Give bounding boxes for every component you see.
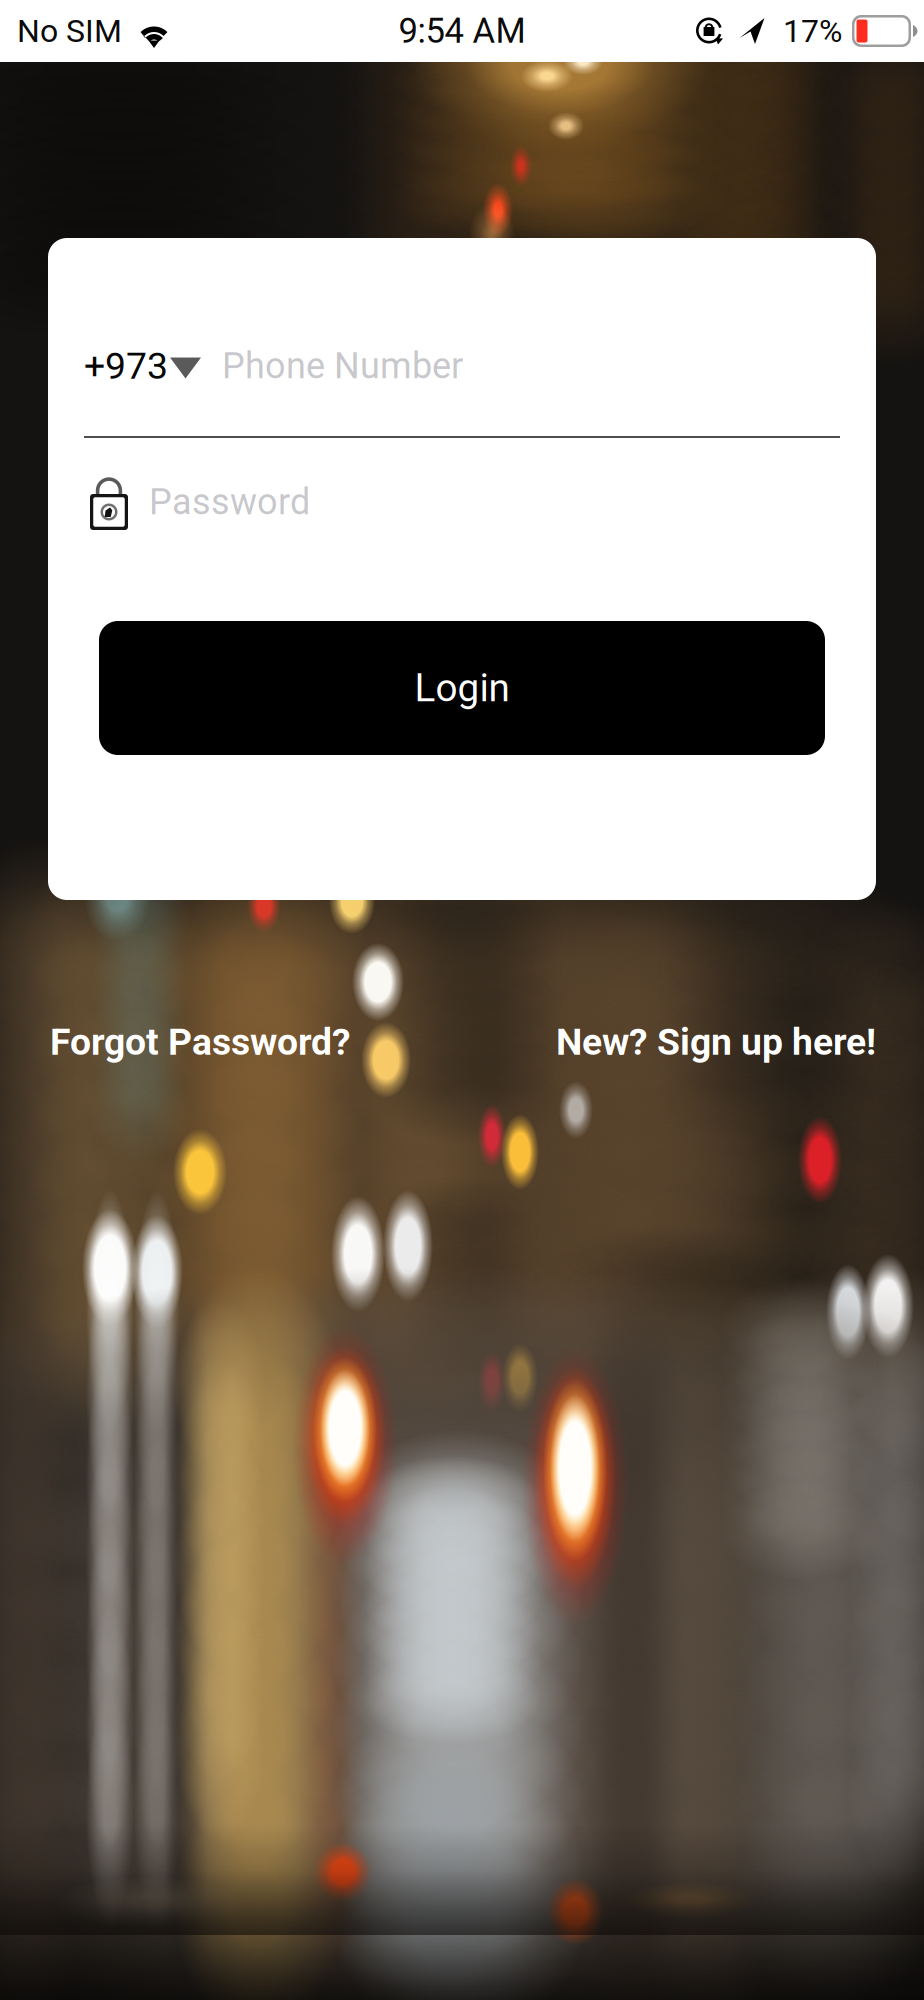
button[interactable]: Login xyxy=(99,621,825,755)
staticText: +973 xyxy=(84,344,168,388)
staticText: Phone Number xyxy=(222,345,463,387)
staticText: 17% xyxy=(783,12,842,50)
staticText: Password xyxy=(149,481,310,523)
staticText: Login xyxy=(414,665,509,711)
staticText: New? Sign up here! xyxy=(556,1020,876,1064)
staticText: Forgot Password? xyxy=(50,1020,351,1064)
button[interactable]: New? Sign up here! xyxy=(556,1020,876,1064)
button[interactable]: Password xyxy=(48,450,876,554)
button[interactable]: +973 xyxy=(48,314,876,418)
button[interactable]: Forgot Password? xyxy=(50,1020,351,1064)
staticText: No SIM xyxy=(17,12,122,50)
staticText: 9:54 AM xyxy=(398,11,525,51)
